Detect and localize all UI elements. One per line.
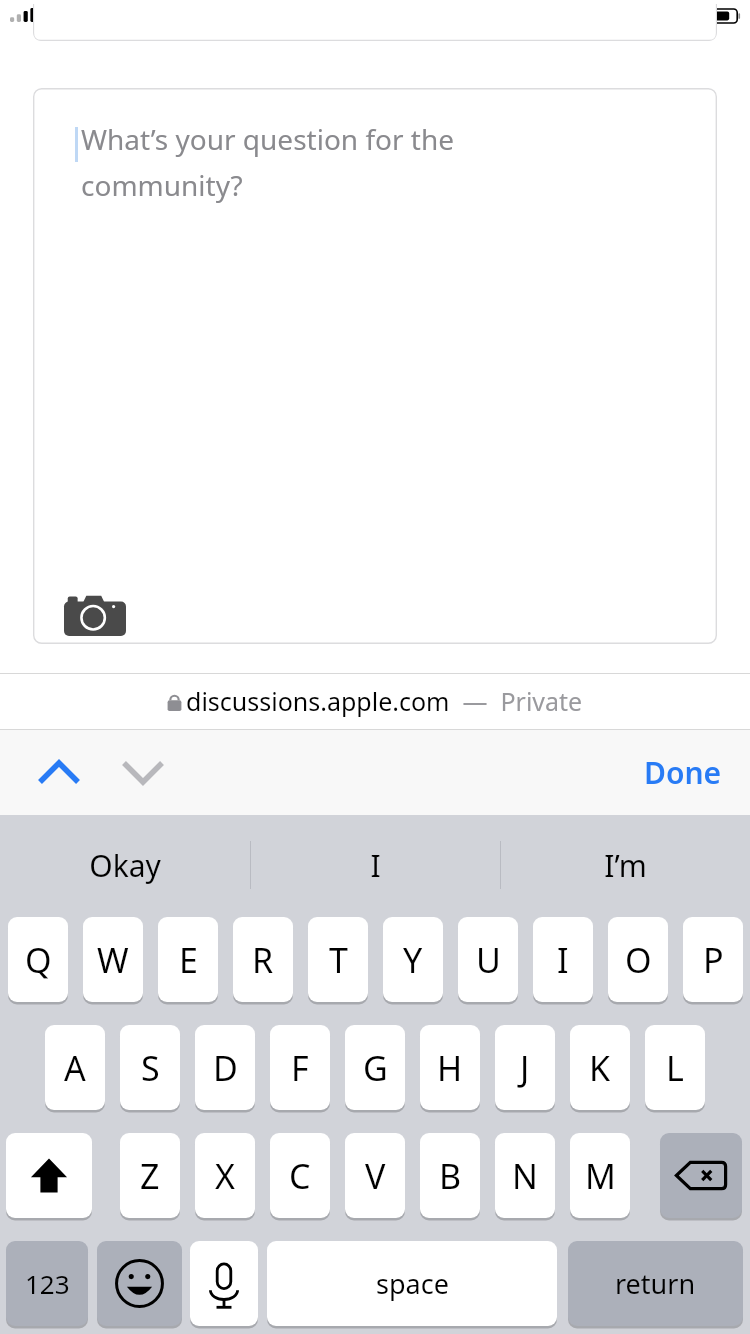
button[interactable]: H	[420, 1025, 480, 1110]
staticText: I	[557, 937, 569, 983]
staticText: G	[363, 1045, 388, 1091]
staticText: I’m	[604, 845, 647, 886]
staticText: X	[215, 1153, 235, 1199]
staticText: K	[589, 1045, 611, 1091]
staticText: return	[615, 1265, 696, 1302]
button[interactable]: U	[458, 917, 518, 1002]
button[interactable]: B	[420, 1133, 480, 1218]
button[interactable]: space	[267, 1241, 557, 1326]
button[interactable]: Okay	[0, 815, 250, 915]
staticText: F	[291, 1045, 309, 1091]
staticText: B	[439, 1153, 462, 1199]
button[interactable]: Backspace	[660, 1133, 742, 1218]
staticText: A	[64, 1045, 86, 1091]
staticText: R	[252, 937, 274, 983]
staticText: space	[376, 1265, 449, 1302]
staticText: L	[666, 1045, 684, 1091]
button[interactable]: R	[233, 917, 293, 1002]
button[interactable]: E	[158, 917, 218, 1002]
button[interactable]: T	[308, 917, 368, 1002]
button[interactable]: S	[120, 1025, 180, 1110]
staticText: M	[585, 1153, 616, 1199]
staticText: O	[625, 937, 652, 983]
staticText: I	[370, 845, 381, 886]
button[interactable]: Done	[634, 742, 732, 803]
staticText: S	[141, 1045, 160, 1091]
staticText: Done	[644, 752, 722, 793]
staticText: H	[437, 1045, 463, 1091]
staticText: Y	[403, 937, 423, 983]
button[interactable]: K	[570, 1025, 630, 1110]
staticText: Q	[25, 937, 52, 983]
button[interactable]: P	[683, 917, 743, 1002]
button[interactable]: Q	[8, 917, 68, 1002]
button[interactable]: D	[195, 1025, 255, 1110]
staticText: D	[213, 1045, 238, 1091]
staticText: J	[520, 1045, 530, 1091]
button[interactable]: M	[570, 1133, 630, 1218]
staticText: U	[476, 937, 501, 983]
button[interactable]: O	[608, 917, 668, 1002]
button[interactable]: N	[495, 1133, 555, 1218]
button[interactable]: I’m	[500, 815, 750, 915]
button[interactable]: Dictation	[190, 1241, 258, 1326]
button[interactable]: return	[568, 1241, 743, 1326]
staticText: Z	[140, 1153, 160, 1199]
button[interactable]: 123	[6, 1241, 88, 1326]
button[interactable]: Z	[120, 1133, 180, 1218]
button[interactable]: A	[45, 1025, 105, 1110]
button[interactable]: What’s your question for the community?	[33, 88, 717, 644]
button[interactable]: Emoji	[97, 1241, 182, 1326]
button[interactable]: I	[250, 815, 500, 915]
staticText: E	[179, 937, 198, 983]
button[interactable]: Add photo	[64, 594, 126, 636]
staticText: discussions.apple.com — Private	[186, 684, 583, 718]
staticText: N	[512, 1153, 538, 1199]
button[interactable]: Shift	[6, 1133, 92, 1218]
button[interactable]: L	[645, 1025, 705, 1110]
staticText: P	[703, 937, 724, 983]
button[interactable]: F	[270, 1025, 330, 1110]
staticText: V	[365, 1153, 386, 1199]
button[interactable]: W	[83, 917, 143, 1002]
staticText: W	[97, 937, 129, 983]
button[interactable]: V	[345, 1133, 405, 1218]
staticText: 123	[25, 1266, 70, 1301]
staticText: C	[289, 1153, 311, 1199]
button[interactable]: C	[270, 1133, 330, 1218]
button[interactable]: Y	[383, 917, 443, 1002]
button[interactable]: I	[533, 917, 593, 1002]
button[interactable]: Previous field	[28, 741, 90, 803]
staticText: What’s your question for the community?	[81, 120, 681, 204]
staticText: T	[329, 937, 348, 983]
staticText: Okay	[89, 845, 161, 886]
button[interactable]: Next field	[112, 741, 174, 803]
button[interactable]: J	[495, 1025, 555, 1110]
button[interactable]: X	[195, 1133, 255, 1218]
button[interactable]: G	[345, 1025, 405, 1110]
